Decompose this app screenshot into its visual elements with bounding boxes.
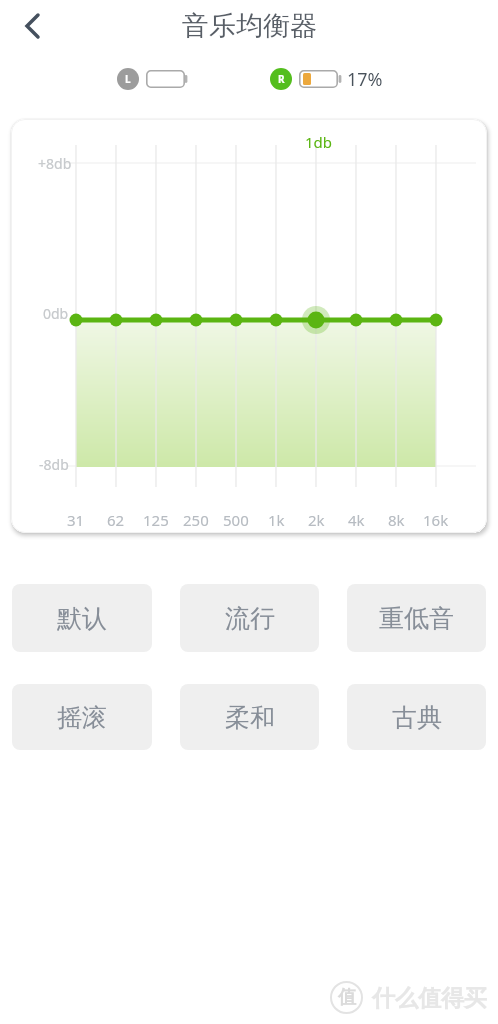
staticText: 500 — [223, 510, 249, 530]
staticText: +8db — [38, 154, 72, 173]
staticText: 125 — [143, 510, 169, 530]
staticText: 音乐均衡器 — [182, 9, 317, 43]
staticText: 0db — [43, 304, 69, 323]
staticText: -8db — [39, 455, 69, 474]
staticText: 4k — [348, 510, 365, 530]
staticText: L — [125, 72, 131, 86]
staticText: 古典 — [392, 702, 442, 733]
staticText: 31 — [67, 510, 85, 530]
button[interactable]: 摇滚 — [12, 684, 152, 750]
staticText: 62 — [107, 510, 125, 530]
staticText: 1db — [305, 132, 333, 152]
staticText: 17% — [347, 67, 383, 92]
staticText: 摇滚 — [57, 702, 107, 733]
staticText: 8k — [388, 510, 405, 530]
staticText: 流行 — [225, 603, 275, 634]
button[interactable]: 重低音 — [347, 584, 486, 652]
staticText: 默认 — [57, 603, 107, 634]
staticText: 柔和 — [225, 702, 275, 733]
staticText: 1k — [268, 510, 285, 530]
staticText: 2k — [308, 510, 325, 530]
staticText: 值 — [338, 986, 356, 1009]
staticText: 16k — [423, 510, 449, 530]
button[interactable]: 古典 — [347, 684, 486, 750]
button[interactable]: 流行 — [180, 584, 319, 652]
staticText: 重低音 — [379, 603, 454, 634]
staticText: 250 — [183, 510, 209, 530]
staticText: R — [278, 72, 285, 86]
button[interactable] — [14, 8, 50, 44]
button[interactable]: 柔和 — [180, 684, 319, 750]
button[interactable]: 默认 — [12, 584, 152, 652]
staticText: 什么值得买 — [372, 984, 487, 1013]
